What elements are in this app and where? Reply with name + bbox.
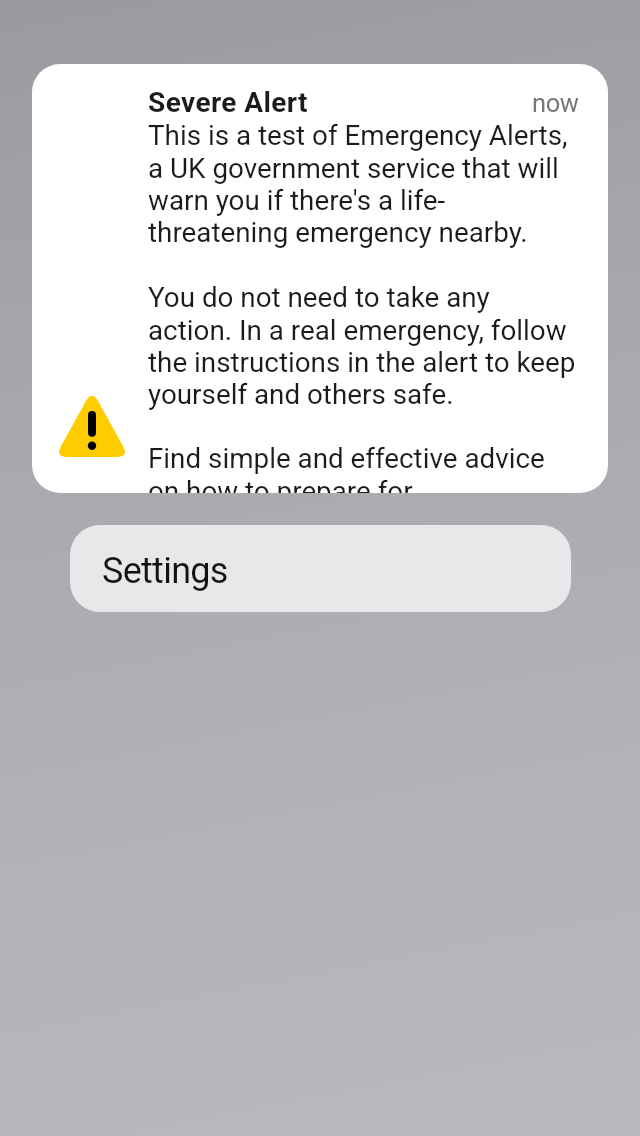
staticText: This is a test of Emergency Alerts, a UK… bbox=[148, 119, 578, 249]
staticText: You do not need to take any action. In a… bbox=[148, 281, 578, 411]
button[interactable]: Settings bbox=[70, 525, 571, 612]
staticText: Settings bbox=[102, 550, 228, 592]
staticText: Find simple and effective advice on how … bbox=[148, 442, 578, 493]
other: Severe alert warning bbox=[55, 390, 129, 457]
staticText: now bbox=[532, 88, 579, 118]
button[interactable]: Severe alert warning bbox=[32, 64, 608, 493]
staticText: Severe Alert bbox=[148, 86, 308, 119]
